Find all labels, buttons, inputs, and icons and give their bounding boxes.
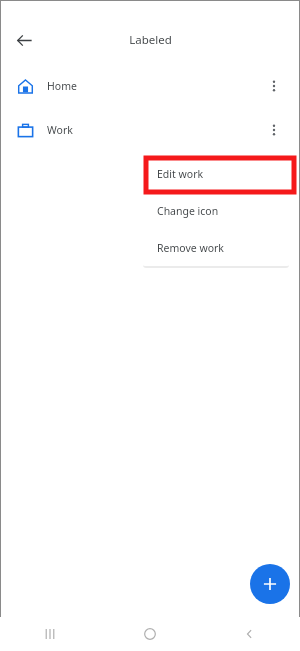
button[interactable]: Home <box>0 64 300 108</box>
button[interactable]: Edit work <box>142 155 290 192</box>
button[interactable]: Change icon <box>142 192 290 229</box>
button[interactable]: Add <box>250 564 290 604</box>
button[interactable]: Back <box>8 24 40 56</box>
button[interactable]: Recents <box>0 617 100 651</box>
staticText: Remove work <box>157 241 224 255</box>
button[interactable]: More options for Work <box>256 112 292 148</box>
staticText: Labeled <box>129 32 172 48</box>
button[interactable]: Back <box>200 617 300 651</box>
button[interactable]: More options for Home <box>256 68 292 104</box>
button[interactable]: Remove work <box>142 229 290 266</box>
staticText: Change icon <box>157 204 219 218</box>
button[interactable]: Home <box>100 617 200 651</box>
staticText: Edit work <box>157 167 204 181</box>
button[interactable]: Work <box>0 108 300 152</box>
staticText: Work <box>47 123 73 137</box>
staticText: Home <box>47 79 77 93</box>
